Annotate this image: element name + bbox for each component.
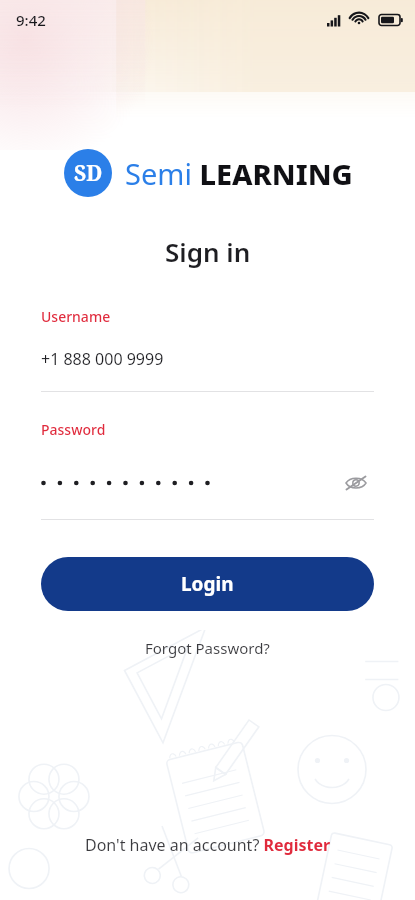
button[interactable]: Show password [338, 465, 374, 501]
staticText: Sign in [165, 234, 251, 269]
button[interactable]: +1 888 000 9999 [41, 348, 164, 370]
staticText: Semi LEARNING [125, 154, 353, 193]
staticText: Don't have an account? Register [85, 834, 331, 856]
button[interactable] [41, 474, 338, 492]
staticText: 9:42 [16, 10, 46, 30]
staticText: Login [181, 571, 234, 597]
staticText: Forgot Password? [145, 638, 270, 658]
staticText: Username [41, 307, 111, 326]
button[interactable]: Forgot Password? [135, 633, 280, 663]
staticText: Password [41, 420, 106, 439]
button[interactable]: Don't have an account? Register [77, 830, 339, 860]
staticText: SD [74, 159, 103, 188]
button[interactable]: Login [41, 557, 374, 611]
